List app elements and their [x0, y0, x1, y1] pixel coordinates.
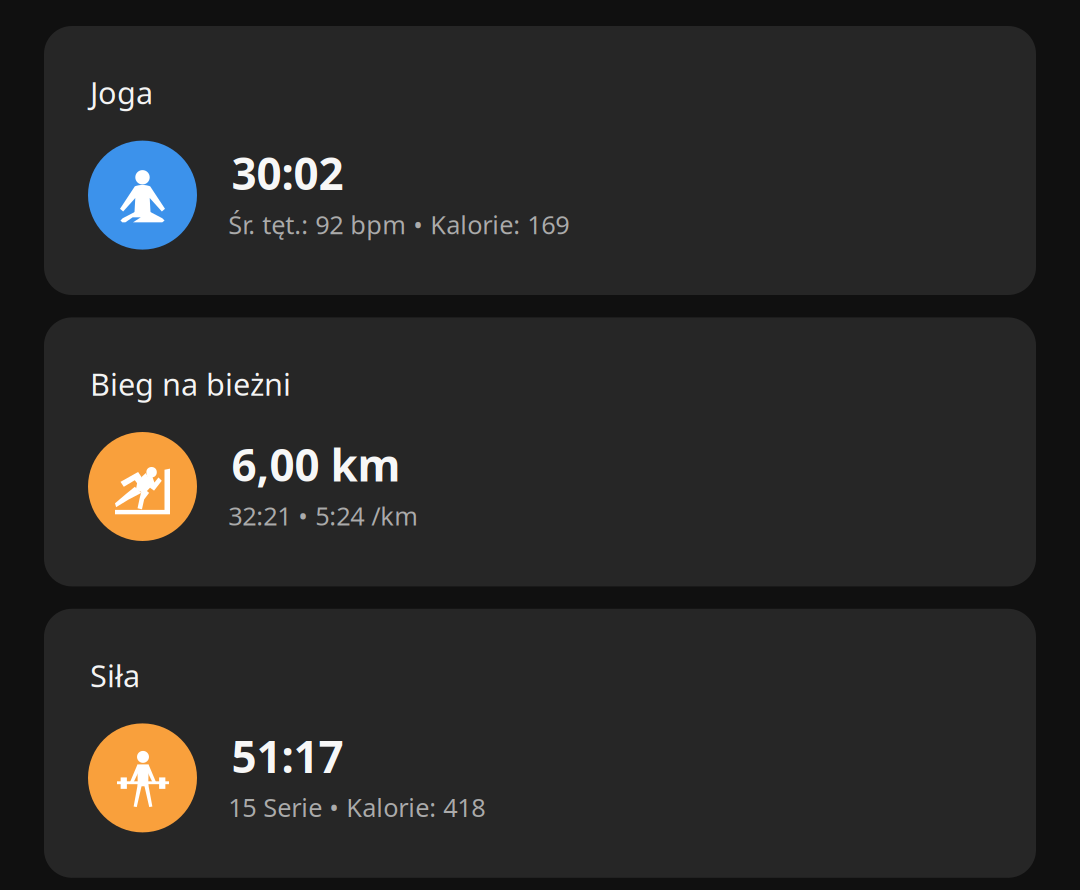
staticText: Bieg na bieżni — [90, 363, 291, 404]
staticText: 30:02 — [231, 144, 343, 202]
button[interactable]: Joga, 30:02, Śr. tęt.: 92 bpm • Kalorie:… — [44, 26, 1036, 295]
button[interactable]: Bieg na bieżni, 6,00 km, 32:21 • 5:24 /k… — [44, 317, 1036, 586]
staticText: Siła — [90, 655, 140, 696]
button[interactable]: Siła, 51:17, 15 Serie • Kalorie: 418 — [44, 609, 1036, 878]
staticText: 51:17 — [231, 727, 343, 785]
staticText: 32:21 • 5:24 /km — [228, 499, 418, 532]
staticText: 6,00 km — [231, 435, 400, 494]
staticText: Śr. tęt.: 92 bpm • Kalorie: 169 — [228, 207, 569, 241]
staticText: Joga — [90, 72, 153, 113]
staticText: 15 Serie • Kalorie: 418 — [228, 790, 485, 824]
